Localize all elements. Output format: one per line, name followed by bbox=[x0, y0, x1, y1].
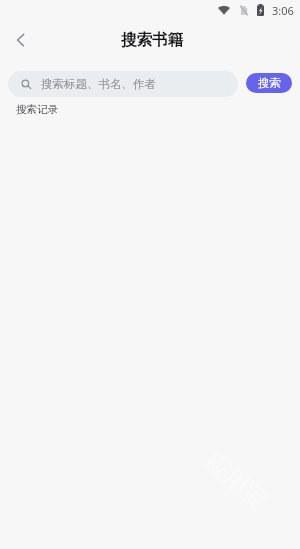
staticText: 搜索标题、书名、作者 bbox=[41, 77, 156, 91]
staticText: 搜索书籍 bbox=[121, 30, 183, 50]
button[interactable]: 搜索标题、书名、作者 bbox=[8, 71, 238, 97]
button[interactable]: 搜索记录 bbox=[8, 99, 66, 120]
staticText: 搜索记录 bbox=[16, 103, 58, 116]
staticText: 3:06 bbox=[272, 3, 294, 18]
button[interactable]: 搜索 bbox=[246, 73, 292, 93]
staticText: 搜索 bbox=[258, 76, 281, 90]
button[interactable]: Back bbox=[0, 20, 40, 60]
